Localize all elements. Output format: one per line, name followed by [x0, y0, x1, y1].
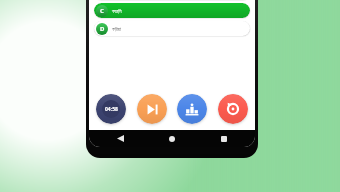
- button[interactable]: Leaderboard: [177, 94, 207, 124]
- button[interactable]: Timer 04:58: [96, 94, 126, 124]
- button[interactable]: C: [94, 3, 250, 18]
- button[interactable]: Recents: [215, 130, 233, 147]
- staticText: C: [100, 7, 104, 15]
- staticText: D: [100, 25, 105, 33]
- button[interactable]: Next question: [137, 94, 167, 124]
- button[interactable]: Back: [111, 130, 129, 147]
- button[interactable]: D: [94, 21, 250, 36]
- button[interactable]: Restart: [218, 94, 248, 124]
- staticText: 04:58: [105, 106, 118, 113]
- staticText: করেনি: [112, 9, 122, 14]
- staticText: করিয়া: [112, 27, 121, 32]
- button[interactable]: Home: [163, 130, 181, 147]
